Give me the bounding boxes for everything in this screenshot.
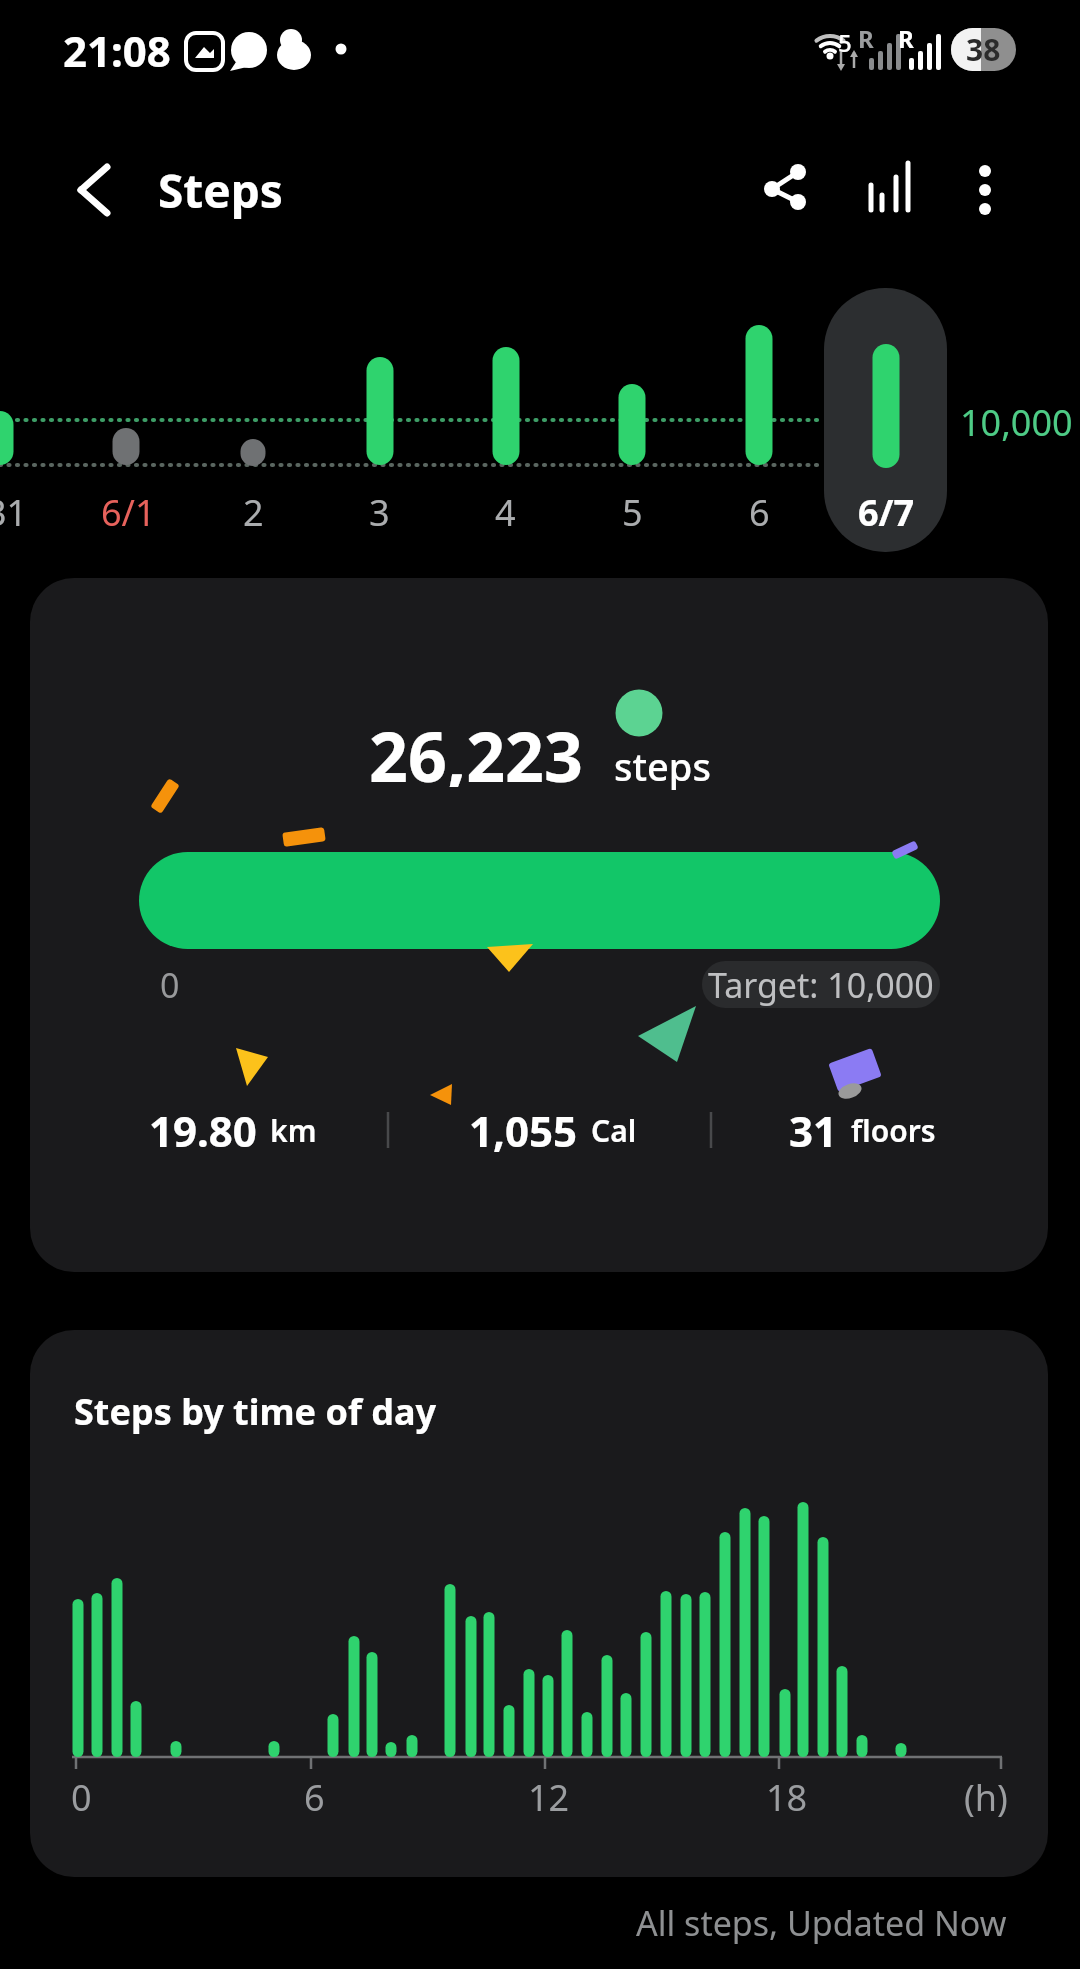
button[interactable] — [952, 155, 1018, 221]
staticText: floors — [851, 1110, 936, 1151]
button[interactable] — [824, 288, 947, 552]
staticText: 21:08 — [63, 22, 171, 77]
staticText: 31 — [789, 1102, 838, 1159]
staticText: 31 — [0, 488, 28, 532]
staticText: 12 — [528, 1773, 570, 1817]
staticText: 19.80 — [149, 1102, 257, 1159]
staticText: km — [270, 1110, 317, 1151]
staticText: R — [858, 22, 874, 48]
staticText: 0 — [71, 1773, 92, 1817]
staticText: 6/7 — [858, 488, 915, 532]
staticText: 5 — [622, 488, 643, 532]
staticText: Target: 10,000 — [708, 962, 934, 1008]
staticText: 6 — [749, 488, 770, 532]
staticText: 6 — [304, 1773, 325, 1817]
staticText: 6/1 — [101, 488, 156, 532]
staticText: 18 — [766, 1773, 808, 1817]
staticText: 1,055 — [469, 1102, 578, 1159]
button[interactable]: 19.80 — [83, 1100, 383, 1160]
staticText: 38 — [966, 29, 1001, 70]
staticText: 3 — [369, 488, 390, 532]
staticText: 5 — [838, 26, 852, 52]
staticText: 10,000 — [960, 398, 1073, 442]
staticText: 4 — [495, 488, 516, 532]
button[interactable]: 31 — [712, 1100, 1012, 1160]
staticText: All steps, Updated Now — [636, 1900, 1007, 1944]
staticText: R — [898, 22, 914, 48]
staticText: steps — [614, 740, 711, 792]
staticText: Cal — [591, 1110, 637, 1151]
button[interactable] — [856, 155, 922, 221]
button[interactable]: 1,055 — [403, 1100, 703, 1160]
staticText: Steps — [158, 159, 283, 222]
button[interactable] — [30, 578, 1048, 1272]
button[interactable] — [60, 158, 160, 222]
staticText: 26,223 — [369, 709, 583, 787]
staticText: 2 — [243, 488, 264, 532]
button[interactable] — [753, 155, 819, 221]
staticText: (h) — [964, 1773, 1008, 1817]
staticText: 0 — [160, 962, 180, 1006]
staticText: Steps by time of day — [74, 1387, 437, 1436]
button[interactable] — [30, 1330, 1048, 1877]
